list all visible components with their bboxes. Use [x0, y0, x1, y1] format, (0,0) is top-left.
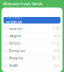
staticText: Welcome back, Sarah — [3, 1, 43, 6]
button[interactable]: Transport — [1, 32, 62, 40]
staticText: -$64 — [53, 34, 60, 38]
staticText: -$182 — [51, 27, 60, 30]
staticText: Utilities — [9, 42, 20, 45]
staticText: Health — [9, 64, 18, 67]
staticText: Total balance — [5, 16, 22, 19]
staticText: -$45 — [53, 64, 60, 67]
staticText: -$120 — [51, 42, 60, 45]
staticText: $4,820.50 — [5, 19, 21, 25]
button[interactable]: Total balance — [3, 17, 60, 23]
staticText: Shopping — [9, 56, 23, 60]
button[interactable]: Health — [1, 62, 62, 69]
staticText: Transport — [9, 34, 21, 38]
staticText: -$98 — [53, 49, 60, 53]
staticText: Dining out — [9, 49, 25, 53]
button[interactable]: Utilities — [1, 40, 62, 47]
staticText: -$210 — [51, 56, 60, 60]
button[interactable]: Shopping — [1, 55, 62, 62]
button[interactable]: Dining out — [1, 47, 62, 55]
staticText: Groceries — [9, 27, 22, 30]
button[interactable]: Groceries — [1, 25, 62, 32]
